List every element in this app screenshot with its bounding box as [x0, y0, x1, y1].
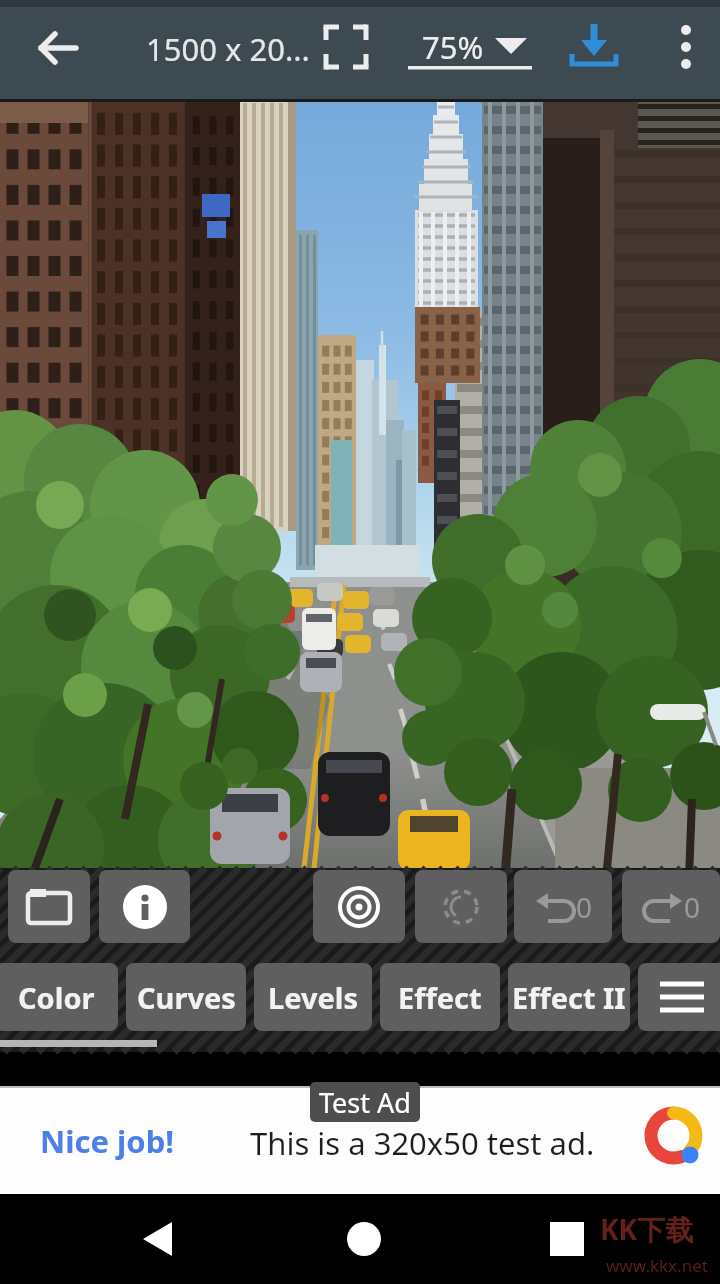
button[interactable]	[30, 22, 84, 74]
staticText: 1500 x 20...	[146, 28, 310, 70]
staticText: www.kkx.net	[606, 1254, 708, 1277]
button[interactable]	[564, 18, 624, 78]
button[interactable]: Test Ad	[0, 1086, 720, 1194]
button[interactable]	[664, 18, 708, 78]
staticText: Levels	[268, 978, 359, 1017]
button[interactable]	[320, 21, 372, 73]
staticText: KK下载	[600, 1210, 694, 1248]
button[interactable]: Effect II	[508, 963, 630, 1031]
button[interactable]	[334, 1207, 394, 1267]
button[interactable]: Effect	[380, 963, 500, 1031]
button[interactable]	[99, 870, 190, 943]
staticText: 0	[684, 888, 701, 926]
staticText: Nice job!	[40, 1120, 174, 1162]
button[interactable]: Curves	[126, 963, 246, 1031]
button[interactable]	[313, 870, 405, 943]
staticText: Curves	[137, 978, 236, 1017]
button[interactable]	[415, 870, 507, 943]
staticText: Effect II	[512, 978, 626, 1017]
staticText: 0	[576, 888, 593, 926]
button[interactable]: 0	[622, 870, 720, 943]
button[interactable]: 0	[514, 870, 612, 943]
button[interactable]: Levels	[254, 963, 372, 1031]
staticText: 75%	[422, 26, 484, 68]
staticText: Effect	[398, 978, 482, 1017]
button[interactable]: 75%	[405, 18, 535, 76]
button[interactable]	[128, 1207, 188, 1267]
button[interactable]	[8, 870, 90, 943]
button[interactable]	[537, 1207, 597, 1267]
staticText: This is a 320x50 test ad.	[250, 1122, 595, 1164]
staticText: Test Ad	[319, 1084, 411, 1121]
button[interactable]: Color	[0, 963, 118, 1031]
staticText: Color	[18, 978, 95, 1017]
button[interactable]	[638, 963, 720, 1031]
